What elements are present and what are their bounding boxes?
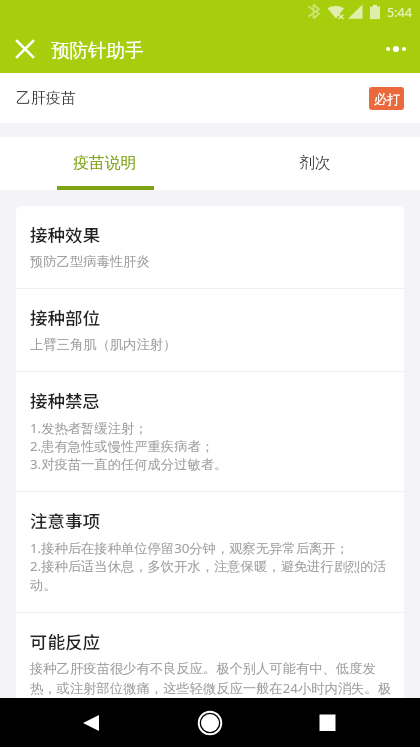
staticText: 预防乙型病毒性肝炎 [30, 253, 150, 270]
staticText: 预防针助手 [51, 39, 144, 62]
staticText: 上臂三角肌（肌内注射） [30, 336, 177, 353]
staticText: 2.接种后适当休息，多饮开水，注意保暖，避免进行剧烈的活动。 [30, 557, 396, 594]
staticText: 必打 [374, 91, 400, 107]
button[interactable]: Back [63, 698, 119, 747]
button[interactable]: More options [371, 24, 420, 73]
button[interactable]: 剂次 [210, 137, 420, 190]
staticText: 3.对疫苗一直的任何成分过敏者。 [30, 455, 228, 473]
staticText: 接种乙肝疫苗很少有不良反应。极个别人可能有中、低度发热，或注射部位微痛，这些轻微… [30, 660, 396, 716]
staticText: 乙肝疫苗 [16, 89, 76, 108]
staticText: 接种效果 [30, 222, 100, 247]
button[interactable]: Recents [301, 698, 357, 747]
staticText: 接种部位 [30, 305, 100, 330]
staticText: 接种禁忌 [30, 388, 100, 413]
staticText: 疫苗说明 [73, 153, 137, 173]
button[interactable]: Home [182, 698, 238, 747]
staticText: 1.发热者暂缓注射； [30, 419, 148, 437]
staticText: 可能反应 [30, 629, 100, 654]
staticText: 5:44 [387, 4, 412, 21]
button[interactable]: 疫苗说明 [0, 137, 210, 190]
staticText: 剂次 [299, 153, 331, 173]
staticText: 2.患有急性或慢性严重疾病者； [30, 437, 215, 455]
button[interactable]: 必打 [369, 87, 404, 110]
staticText: 1.接种后在接种单位停留30分钟，观察无异常后离开； [30, 539, 349, 557]
button[interactable]: Close [0, 24, 49, 73]
staticText: 注意事项 [30, 508, 100, 533]
